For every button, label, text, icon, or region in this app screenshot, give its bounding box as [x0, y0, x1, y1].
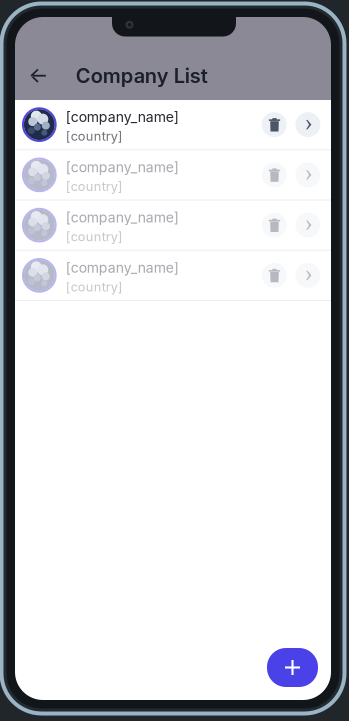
staticText: [country]: [66, 279, 123, 295]
button[interactable]: Open company details: [295, 213, 320, 238]
staticText: [company_name]: [66, 108, 179, 125]
button[interactable]: Open company details: [295, 162, 320, 187]
staticText: [company_name]: [66, 159, 179, 176]
button[interactable]: Open company details: [295, 112, 320, 137]
staticText: [country]: [66, 128, 123, 144]
button[interactable]: Add company: [267, 648, 318, 687]
button[interactable]: [company_name]: [15, 150, 331, 199]
button[interactable]: Delete company: [262, 112, 287, 137]
staticText: [company_name]: [66, 259, 179, 276]
button[interactable]: Delete company: [262, 213, 287, 238]
button[interactable]: Open company details: [295, 263, 320, 288]
staticText: [country]: [66, 179, 123, 194]
button[interactable]: Back: [21, 59, 55, 93]
staticText: [company_name]: [66, 209, 179, 226]
button[interactable]: [company_name]: [15, 100, 331, 149]
staticText: Company List: [76, 64, 208, 88]
button[interactable]: Delete company: [262, 263, 287, 288]
staticText: [country]: [66, 229, 123, 244]
button[interactable]: [company_name]: [15, 251, 331, 300]
button[interactable]: [company_name]: [15, 200, 331, 250]
button[interactable]: Delete company: [262, 162, 287, 187]
